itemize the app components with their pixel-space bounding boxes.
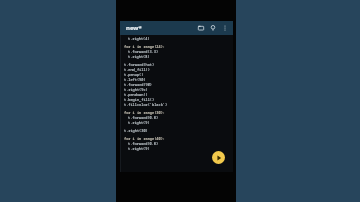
staticText: t.forward(90) [124,82,230,87]
staticText: t.fillcolor('black') [124,102,230,107]
staticText: t.end_fill() [124,67,230,72]
button[interactable]: t.right(4) [120,35,233,172]
button[interactable]: Run [212,151,225,164]
staticText: for i in range(40): [124,136,230,141]
staticText: for i in range(30): [124,110,230,115]
staticText: t.begin_fill() [124,97,230,102]
staticText: t.forward(0.8) [128,141,230,146]
staticText: for i in range(24): [124,44,230,49]
staticText: t.right(4) [128,36,230,41]
staticText: t.right(9) [128,146,230,151]
staticText: t.pendown() [124,92,230,97]
button[interactable]: Save [195,22,207,34]
staticText: t.left(90) [124,77,230,82]
staticText: t.right(30) [124,128,230,133]
button[interactable]: More options [219,22,231,34]
staticText: t.forward(hot) [124,62,230,67]
staticText: t.forward(3.3) [128,49,230,54]
button[interactable]: Hints [207,22,219,34]
staticText: new* [126,24,142,32]
staticText: t.right(8) [128,54,230,59]
staticText: t.penup() [124,72,230,77]
staticText: t.forward(0.8) [128,115,230,120]
staticText: t.right(9) [128,120,230,125]
staticText: t.right(9c) [124,87,230,92]
